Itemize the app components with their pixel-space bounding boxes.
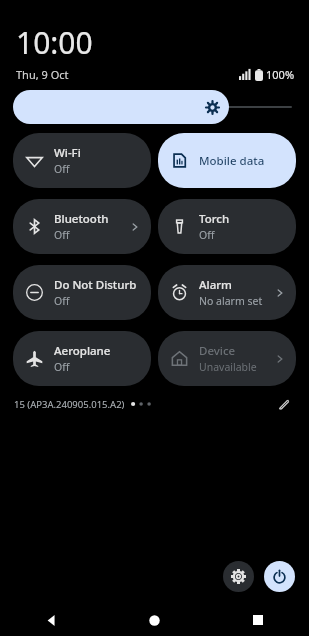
staticText: Aeroplane mode [54, 343, 142, 359]
staticText: Device controls [199, 343, 275, 359]
staticText: Off [54, 360, 70, 374]
button[interactable]: Recents [206, 604, 309, 636]
button[interactable]: Brightness [13, 90, 296, 124]
button[interactable]: Settings [223, 561, 254, 592]
staticText: Mobile data [199, 153, 265, 169]
staticText: Bluetooth [54, 211, 109, 227]
staticText: Off [54, 162, 70, 176]
button[interactable]: Edit tiles [271, 393, 295, 415]
button[interactable]: Home [103, 604, 206, 636]
staticText: Off [54, 294, 70, 308]
staticText: 100% [266, 67, 295, 82]
staticText: Thu, 9 Oct [16, 67, 69, 82]
staticText: Off [54, 228, 70, 242]
staticText: Unavailable [199, 360, 257, 374]
button[interactable]: Do Not Disturb [13, 265, 151, 320]
button[interactable]: Device controls [158, 331, 296, 386]
staticText: Alarm [199, 277, 232, 293]
button[interactable]: Alarm [158, 265, 296, 320]
staticText: No alarm set [199, 294, 263, 308]
staticText: Torch [199, 211, 230, 227]
staticText: 10:00 [16, 22, 93, 63]
staticText: Do Not Disturb [54, 277, 137, 293]
button[interactable]: Power [264, 561, 295, 592]
staticText: Off [199, 228, 215, 242]
button[interactable]: Mobile data [158, 133, 296, 188]
staticText: Wi-Fi [54, 145, 81, 161]
button[interactable]: Bluetooth [13, 199, 151, 254]
button[interactable]: Wi-Fi [13, 133, 151, 188]
staticText: 15 (AP3A.240905.015.A2) [14, 398, 125, 411]
button[interactable]: Aeroplane mode [13, 331, 151, 386]
button[interactable]: Back [0, 604, 103, 636]
button[interactable]: Torch [158, 199, 296, 254]
